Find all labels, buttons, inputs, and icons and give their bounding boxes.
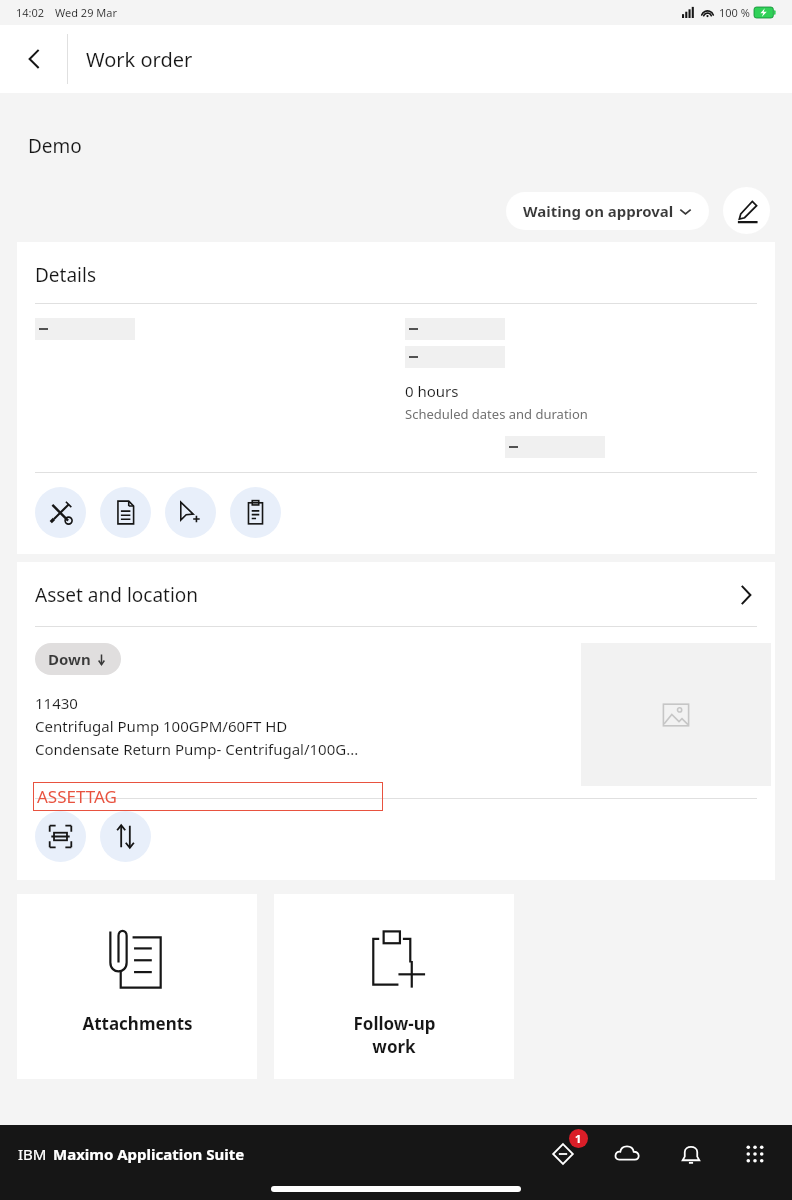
button[interactable]: Asset and location	[17, 562, 775, 626]
staticText: Condensate Return Pump- Centrifugal/100G…	[35, 739, 359, 759]
staticText: Centrifugal Pump 100GPM/60FT HD	[35, 716, 288, 736]
staticText: Details	[35, 262, 97, 288]
button[interactable]: Down	[35, 643, 121, 675]
button[interactable]: Alerts	[540, 1131, 586, 1177]
button[interactable]: Cloud	[604, 1131, 650, 1177]
staticText: Follow-up	[353, 1012, 436, 1035]
button[interactable]: Waiting on approval	[506, 192, 709, 230]
button[interactable]: Back	[0, 25, 67, 93]
staticText: Scheduled dates and duration	[405, 405, 588, 423]
button[interactable]: Notifications	[668, 1131, 714, 1177]
staticText: 100 %	[719, 5, 750, 20]
staticText: Attachments	[82, 1012, 193, 1035]
button[interactable]: Edit	[723, 187, 770, 234]
staticText: 0 hours	[405, 381, 459, 401]
staticText: 1	[575, 1131, 582, 1146]
staticText: IBM	[18, 1144, 47, 1164]
button[interactable]: Transfer	[100, 811, 151, 862]
button[interactable]: Document	[100, 487, 151, 538]
staticText: Waiting on approval	[523, 201, 674, 221]
button[interactable]: Tools	[35, 487, 86, 538]
staticText: Work order	[86, 46, 193, 73]
staticText: ASSETTAG	[37, 785, 117, 808]
button[interactable]: Tasks	[230, 487, 281, 538]
staticText: work	[372, 1035, 416, 1058]
button[interactable]: Apps	[732, 1131, 778, 1177]
staticText: Down	[48, 649, 91, 669]
staticText: Wed 29 Mar	[55, 5, 117, 20]
button[interactable]: Scan	[35, 811, 86, 862]
button[interactable]: Select	[165, 487, 216, 538]
button[interactable]: Attachments	[17, 894, 257, 1079]
staticText: Demo	[28, 133, 82, 159]
button[interactable]: Follow-up	[274, 894, 514, 1079]
staticText: 11430	[35, 693, 78, 713]
staticText: 14:02	[16, 5, 45, 20]
staticText: Maximo Application Suite	[53, 1144, 245, 1164]
staticText: Asset and location	[35, 582, 199, 608]
